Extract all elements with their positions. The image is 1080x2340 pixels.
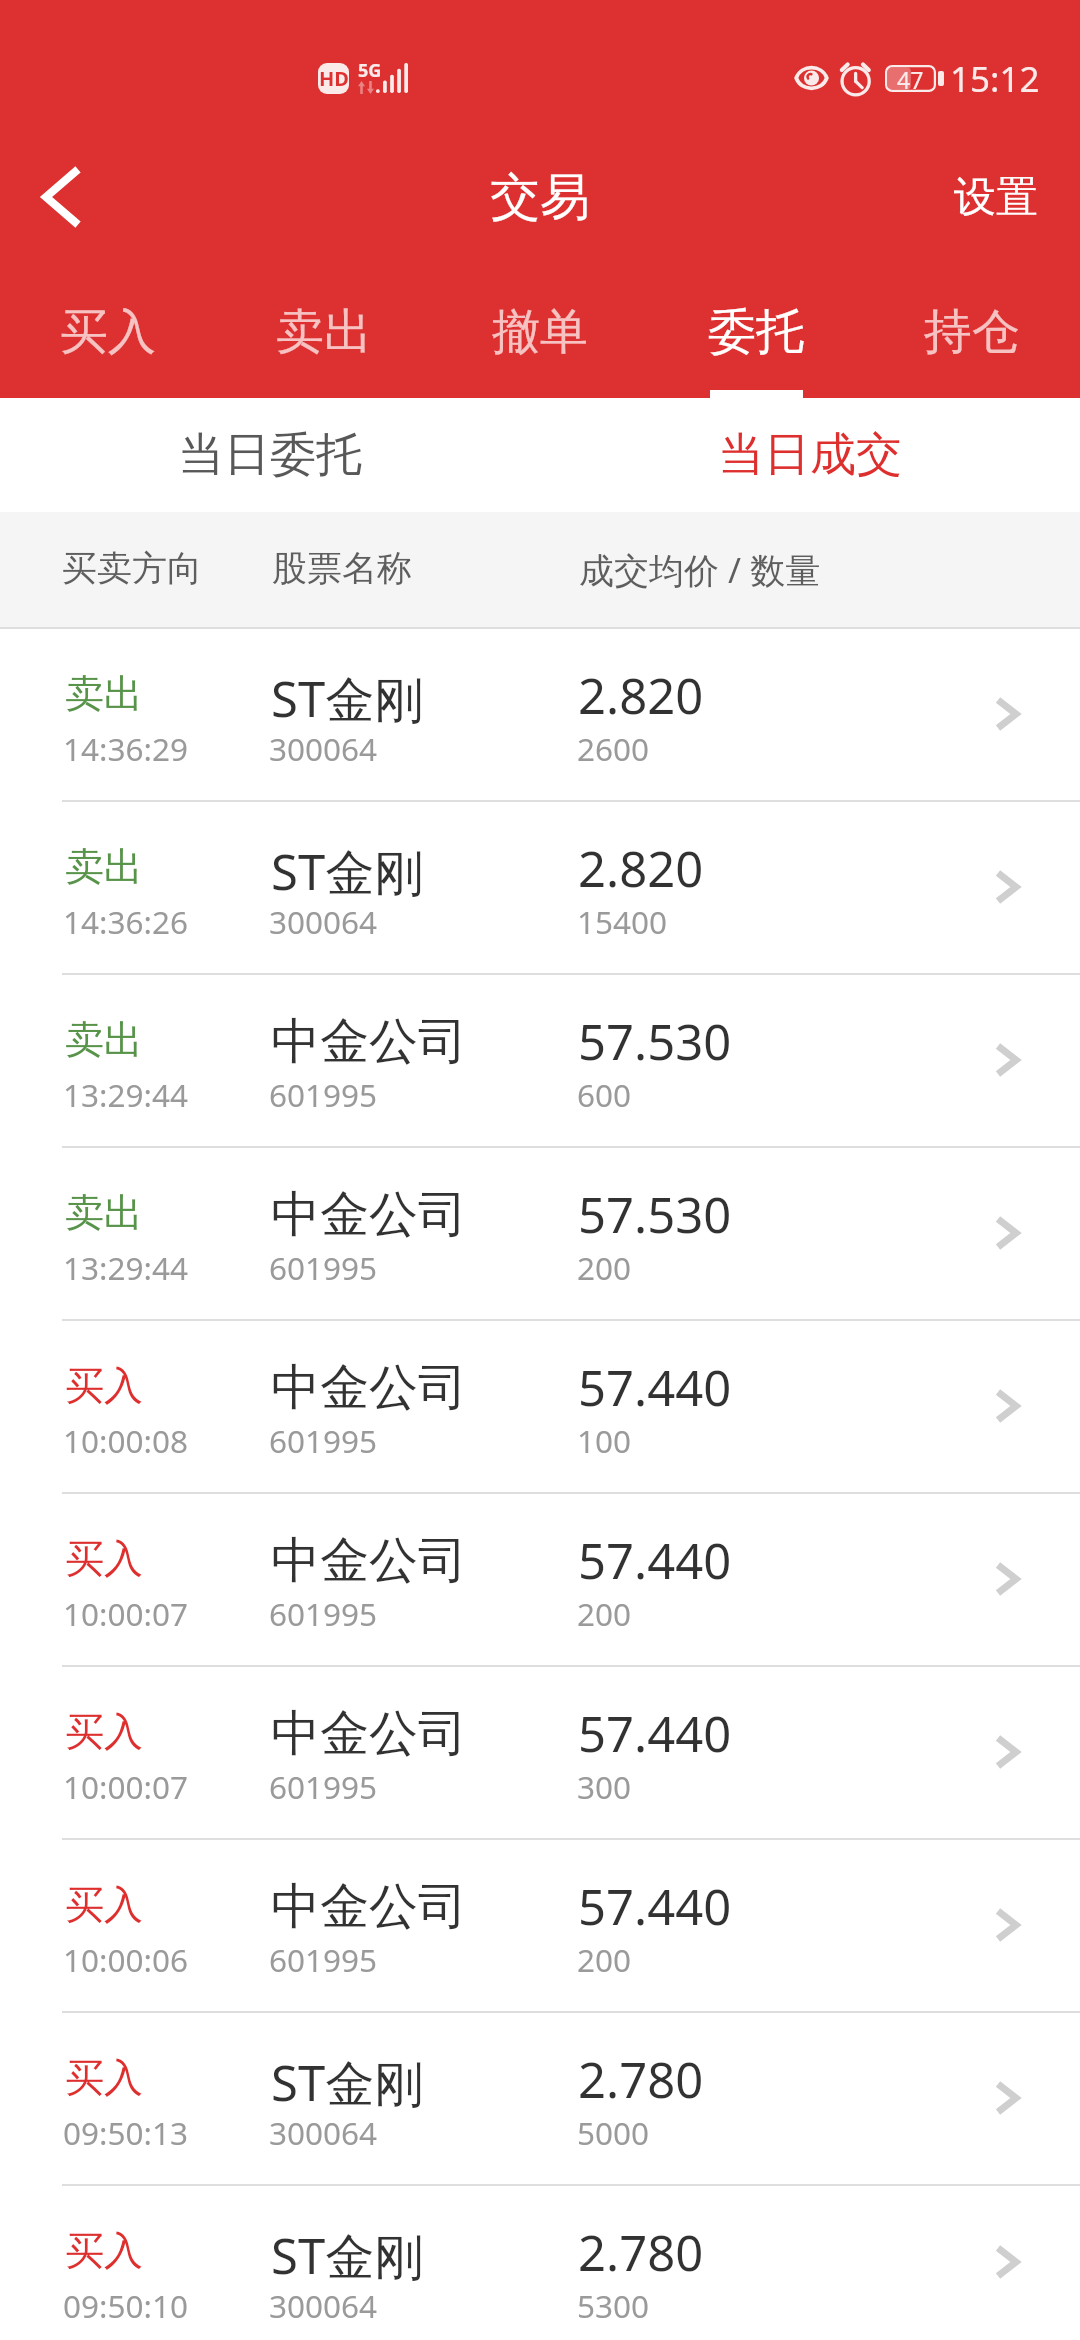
staticText: 601995 [269, 1592, 378, 1635]
staticText: 601995 [269, 1765, 378, 1808]
staticText: 200 [577, 1938, 632, 1981]
button[interactable]: 卖出 [0, 629, 1080, 800]
staticText: 成交均价 / 数量 [579, 546, 821, 594]
staticText: 卖出 [65, 1188, 143, 1237]
staticText: 10:00:07 [63, 1592, 188, 1635]
staticText: 卖出 [65, 669, 143, 718]
button[interactable]: Back [0, 137, 120, 257]
staticText: 57.440 [578, 1873, 732, 1940]
staticText: 买卖方向 [62, 546, 202, 590]
staticText: 卖出 [65, 1015, 143, 1064]
staticText: 300064 [269, 727, 378, 770]
staticText: 当日委托 [178, 426, 362, 484]
staticText: 2.780 [578, 2219, 704, 2286]
staticText: 601995 [269, 1938, 378, 1981]
staticText: 100 [577, 1419, 632, 1462]
staticText: 中金公司 [271, 1357, 467, 1419]
staticText: 2.780 [578, 2046, 704, 2113]
staticText: 47 [897, 64, 924, 91]
button[interactable]: 当日成交 [540, 398, 1080, 512]
staticText: 5000 [577, 2111, 650, 2154]
staticText: 09:50:10 [63, 2284, 188, 2327]
staticText: 卖出 [276, 302, 372, 362]
staticText: 2.820 [578, 835, 704, 902]
staticText: 交易 [490, 166, 590, 229]
staticText: HD [319, 65, 349, 92]
staticText: 持仓 [924, 302, 1020, 362]
staticText: 2.820 [578, 662, 704, 729]
button[interactable]: 买入 [0, 1840, 1080, 2011]
staticText: 设置 [954, 171, 1038, 224]
staticText: 10:00:06 [63, 1938, 188, 1981]
staticText: 10:00:08 [63, 1419, 188, 1462]
staticText: 57.530 [578, 1008, 732, 1075]
staticText: 中金公司 [271, 1011, 467, 1073]
staticText: 57.440 [578, 1700, 732, 1767]
staticText: 买入 [60, 302, 156, 362]
button[interactable]: 卖出 [0, 975, 1080, 1146]
button[interactable]: 卖出 [0, 1148, 1080, 1319]
staticText: 中金公司 [271, 1184, 467, 1246]
staticText: 撤单 [492, 302, 588, 362]
staticText: 15:12 [950, 55, 1040, 103]
staticText: ST金刚 [271, 838, 424, 905]
staticText: 5300 [577, 2284, 650, 2327]
staticText: 委托 [708, 302, 804, 362]
button[interactable]: 买入 [0, 261, 216, 398]
staticText: 09:50:13 [63, 2111, 188, 2154]
button[interactable]: 买入 [0, 1321, 1080, 1492]
staticText: 57.440 [578, 1527, 732, 1594]
button[interactable]: 买入 [0, 1494, 1080, 1665]
staticText: 601995 [269, 1419, 378, 1462]
staticText: 300064 [269, 900, 378, 943]
staticText: 5G [358, 58, 382, 83]
staticText: 买入 [65, 2226, 143, 2275]
staticText: 10:00:07 [63, 1765, 188, 1808]
staticText: 13:29:44 [63, 1246, 188, 1289]
button[interactable]: 设置 [914, 137, 1080, 257]
button[interactable]: 卖出 [0, 802, 1080, 973]
staticText: 300 [577, 1765, 632, 1808]
staticText: 中金公司 [271, 1703, 467, 1765]
staticText: ST金刚 [271, 2222, 424, 2289]
button[interactable]: 卖出 [216, 261, 432, 398]
staticText: 买入 [65, 1534, 143, 1583]
staticText: 2600 [577, 727, 650, 770]
staticText: 601995 [269, 1246, 378, 1289]
button[interactable]: 撤单 [432, 261, 648, 398]
staticText: 买入 [65, 1361, 143, 1410]
staticText: 200 [577, 1592, 632, 1635]
button[interactable]: 委托 [648, 261, 864, 398]
staticText: 股票名称 [272, 546, 412, 590]
staticText: 14:36:26 [63, 900, 188, 943]
staticText: 15400 [577, 900, 668, 943]
staticText: 卖出 [65, 842, 143, 891]
button[interactable]: 买入 [0, 2186, 1080, 2340]
staticText: ST金刚 [271, 2049, 424, 2116]
staticText: 当日成交 [718, 426, 902, 484]
staticText: 13:29:44 [63, 1073, 188, 1116]
staticText: 14:36:29 [63, 727, 188, 770]
staticText: 买入 [65, 1880, 143, 1929]
staticText: 300064 [269, 2111, 378, 2154]
staticText: 300064 [269, 2284, 378, 2327]
button[interactable]: 持仓 [864, 261, 1080, 398]
staticText: 600 [577, 1073, 632, 1116]
button[interactable]: 买入 [0, 2013, 1080, 2184]
staticText: 57.530 [578, 1181, 732, 1248]
staticText: 601995 [269, 1073, 378, 1116]
button[interactable]: 当日委托 [0, 398, 540, 512]
staticText: 买入 [65, 2053, 143, 2102]
staticText: 中金公司 [271, 1530, 467, 1592]
staticText: 200 [577, 1246, 632, 1289]
staticText: 57.440 [578, 1354, 732, 1421]
staticText: 中金公司 [271, 1876, 467, 1938]
staticText: 买入 [65, 1707, 143, 1756]
staticText: ST金刚 [271, 665, 424, 732]
button[interactable]: 买入 [0, 1667, 1080, 1838]
